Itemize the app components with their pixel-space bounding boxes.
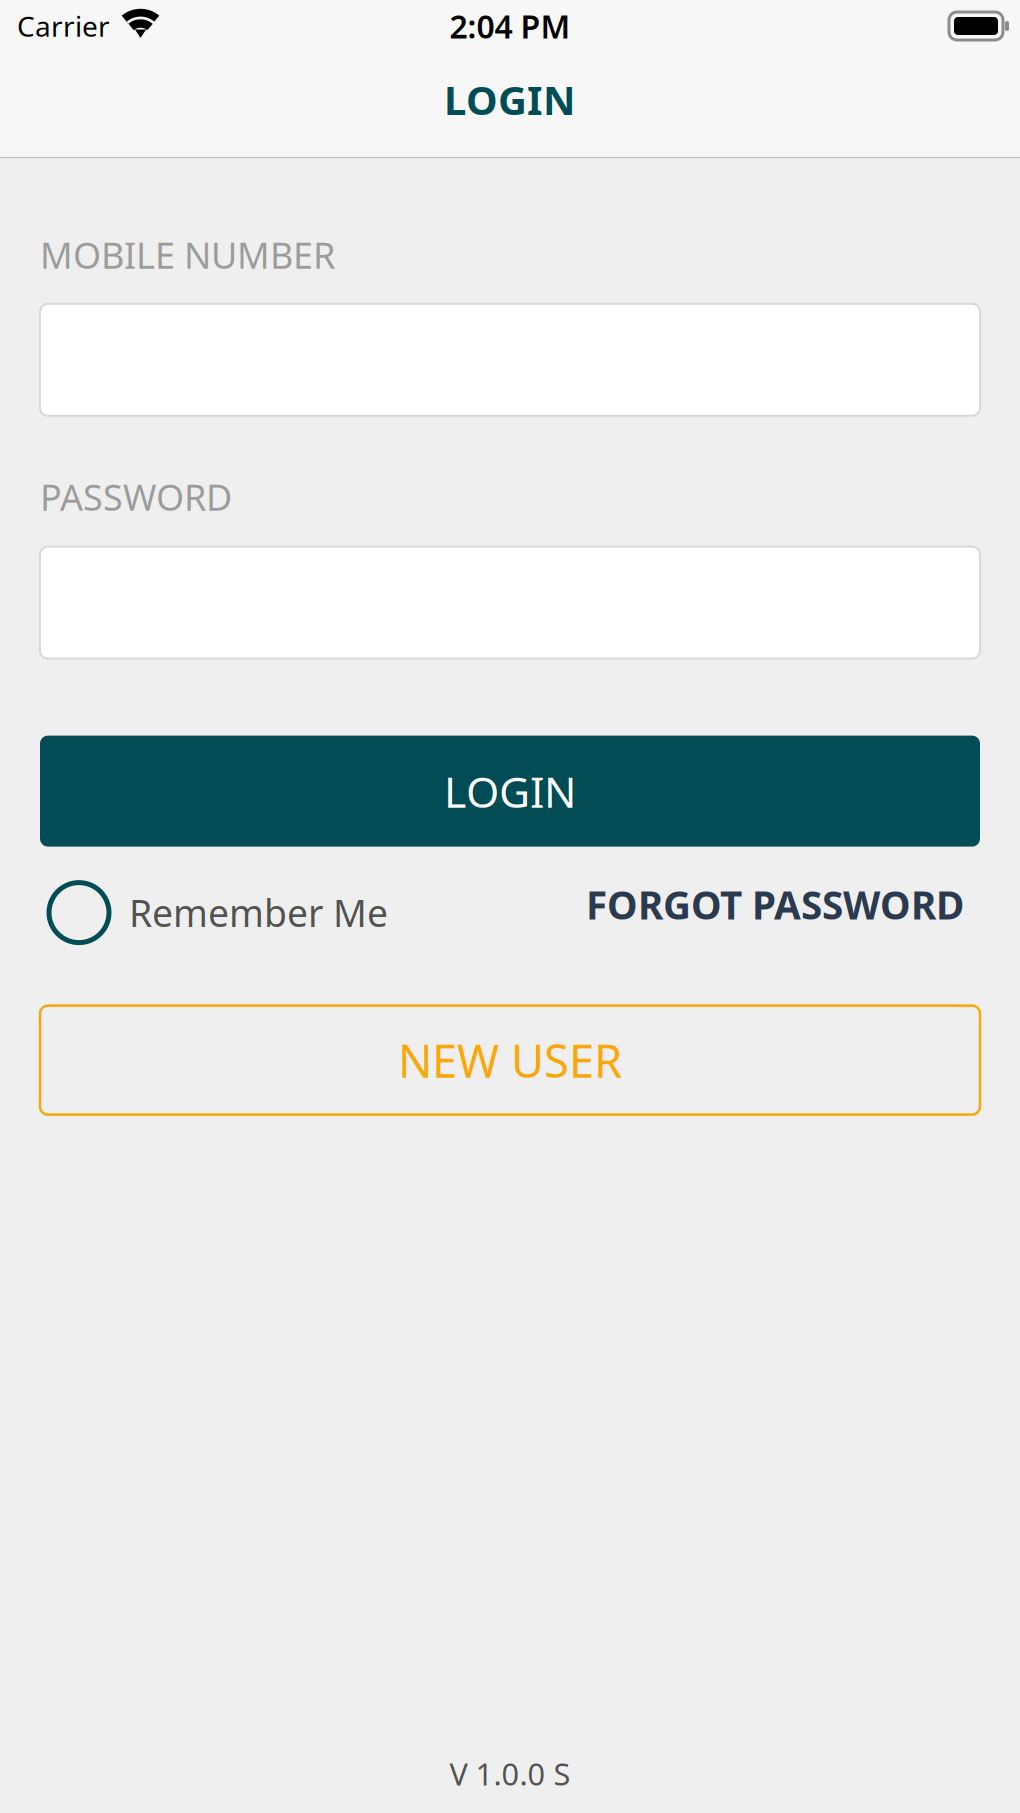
button[interactable]: FORGOT PASSWORD bbox=[602, 883, 980, 943]
staticText: V 1.0.0 S bbox=[449, 1753, 570, 1794]
staticText: NEW USER bbox=[398, 1030, 622, 1090]
staticText: Carrier bbox=[17, 7, 110, 45]
button[interactable]: NEW USER bbox=[40, 1006, 980, 1115]
button[interactable]: Remember Me bbox=[40, 883, 388, 943]
button[interactable]: Mobile number bbox=[40, 304, 980, 416]
button[interactable]: Password bbox=[40, 547, 980, 659]
staticText: 2:04 PM bbox=[449, 5, 570, 47]
staticText: LOGIN bbox=[444, 73, 576, 126]
staticText: MOBILE NUMBER bbox=[40, 231, 335, 279]
button[interactable]: LOGIN bbox=[40, 736, 980, 847]
staticText: PASSWORD bbox=[40, 473, 232, 521]
staticText: Remember Me bbox=[129, 888, 388, 937]
staticText: FORGOT PASSWORD bbox=[586, 879, 964, 930]
staticText: LOGIN bbox=[444, 763, 576, 819]
